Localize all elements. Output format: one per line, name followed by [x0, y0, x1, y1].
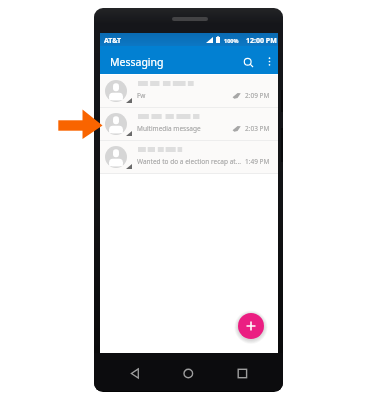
staticText: Wanted to do a election recap at... — [137, 157, 245, 166]
button[interactable]: More options — [260, 52, 278, 70]
staticText: Messaging — [110, 55, 164, 69]
button[interactable]: Multimedia message — [100, 108, 278, 141]
button[interactable]: Wanted to do a election recap at... — [100, 141, 278, 174]
staticText: 2:09 PM — [245, 91, 270, 100]
staticText: 1:49 PM — [245, 157, 270, 166]
staticText: 12:00 PM — [246, 36, 277, 46]
staticText: Multimedia message — [137, 124, 245, 133]
staticText: 100% — [224, 37, 239, 44]
button[interactable]: Fw — [100, 75, 278, 108]
staticText: Fw — [137, 91, 245, 100]
staticText: AT&T — [104, 36, 122, 46]
button[interactable]: New message — [238, 313, 264, 339]
staticText: 2:03 PM — [245, 124, 270, 133]
button[interactable]: Search — [238, 52, 258, 72]
